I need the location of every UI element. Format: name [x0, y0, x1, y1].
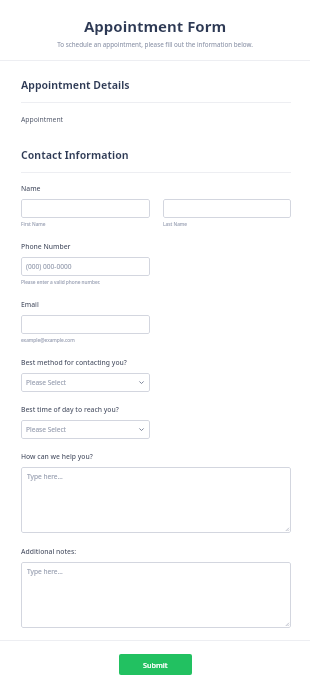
- staticText: Please Select: [26, 425, 67, 434]
- button[interactable]: Submit: [119, 654, 192, 675]
- staticText: Last Name: [163, 221, 188, 228]
- staticText: First Name: [21, 221, 46, 228]
- button[interactable]: [21, 315, 150, 334]
- staticText: (000) 000-0000: [26, 262, 72, 271]
- staticText: Appointment Form: [0, 16, 310, 36]
- button[interactable]: Type here...: [21, 467, 291, 533]
- staticText: Type here...: [27, 472, 63, 481]
- staticText: Contact Information: [21, 148, 129, 162]
- button[interactable]: [21, 199, 150, 218]
- button[interactable]: Please Select: [21, 373, 150, 392]
- staticText: Best method for contacting you?: [21, 358, 127, 367]
- button[interactable]: [163, 199, 291, 218]
- staticText: Please Select: [26, 378, 67, 387]
- staticText: Email: [21, 300, 39, 309]
- staticText: Appointment Details: [21, 78, 130, 92]
- staticText: Phone Number: [21, 242, 71, 251]
- staticText: To schedule an appointment, please fill …: [0, 40, 310, 49]
- staticText: Name: [21, 184, 41, 193]
- staticText: Additional notes:: [21, 547, 77, 556]
- button[interactable]: Type here...: [21, 562, 291, 628]
- staticText: example@example.com: [21, 337, 75, 344]
- staticText: Best time of day to reach you?: [21, 405, 119, 414]
- button[interactable]: Please Select: [21, 420, 150, 439]
- staticText: Please enter a valid phone number.: [21, 279, 101, 286]
- staticText: Submit: [143, 660, 168, 670]
- staticText: How can we help you?: [21, 452, 93, 461]
- button[interactable]: (000) 000-0000: [21, 257, 150, 276]
- staticText: Appointment: [21, 115, 64, 124]
- staticText: Type here...: [27, 567, 63, 576]
